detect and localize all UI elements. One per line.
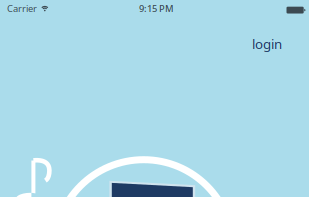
staticText: Carrier <box>7 2 37 15</box>
staticText: login <box>252 35 282 53</box>
staticText: 9:15 PM <box>139 2 174 15</box>
button[interactable]: login <box>252 35 282 53</box>
